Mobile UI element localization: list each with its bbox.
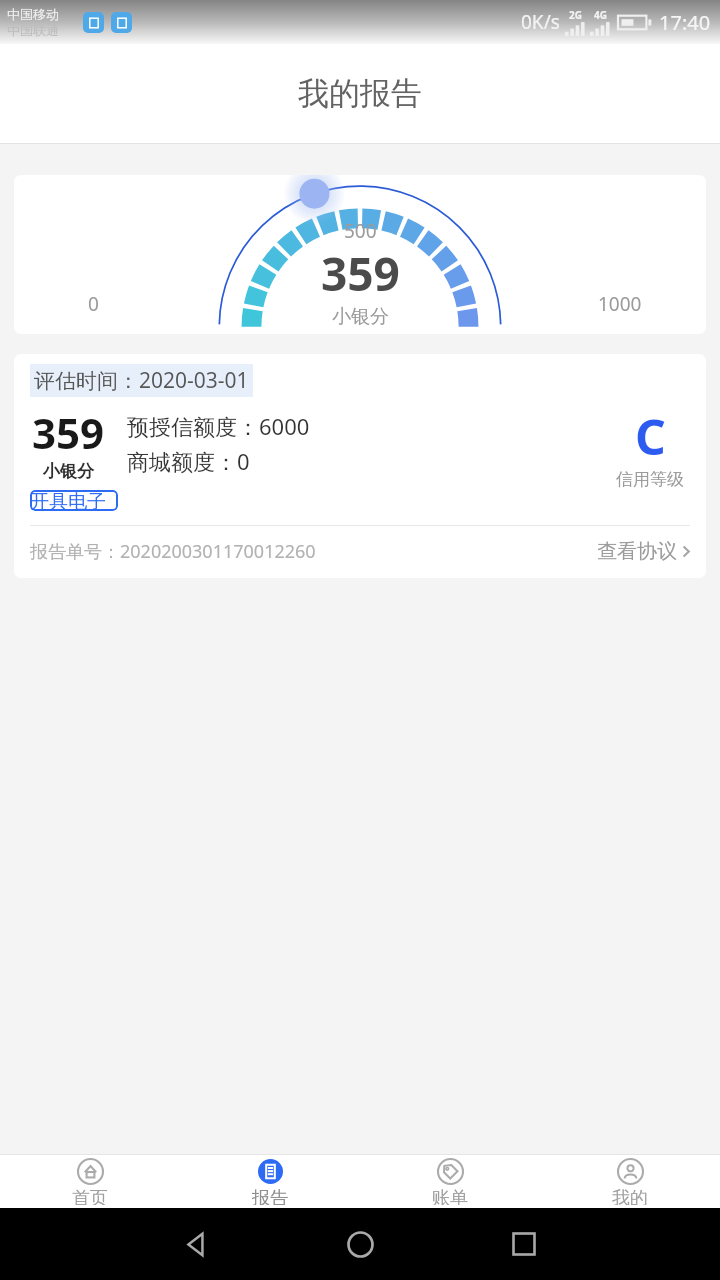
staticText: 359 bbox=[321, 242, 400, 305]
staticText: 查看协议 bbox=[597, 539, 677, 564]
button[interactable]: 我的 bbox=[540, 1155, 720, 1208]
staticText: 小银分 bbox=[332, 305, 389, 329]
button[interactable]: 报告 bbox=[180, 1155, 360, 1208]
staticText: 报告单号：2020200301170012260 bbox=[30, 539, 597, 564]
staticText: 评估时间：2020-03-01 bbox=[34, 366, 249, 395]
staticText: 0K/s bbox=[521, 9, 560, 35]
staticText: 17:40 bbox=[659, 9, 711, 36]
staticText: 500 bbox=[344, 218, 377, 244]
staticText: 我的报告 bbox=[298, 74, 422, 113]
staticText: 4G bbox=[594, 8, 607, 22]
staticText: 1000 bbox=[598, 291, 642, 317]
staticText: 0 bbox=[88, 291, 99, 317]
staticText: 2G bbox=[569, 8, 582, 22]
button[interactable]: Back bbox=[173, 1221, 219, 1267]
staticText: 信用等级 bbox=[616, 469, 684, 490]
staticText: 首页 bbox=[72, 1187, 108, 1205]
staticText: 359 bbox=[32, 404, 105, 461]
staticText: 中国移动 bbox=[7, 6, 59, 22]
button[interactable]: 查看协议 bbox=[597, 536, 690, 567]
staticText: C bbox=[635, 404, 666, 469]
button[interactable]: 开具电子发票 bbox=[30, 490, 118, 511]
staticText: 我的 bbox=[612, 1187, 648, 1205]
button[interactable]: Recent apps bbox=[501, 1221, 547, 1267]
staticText: 中国联通 bbox=[7, 22, 59, 38]
staticText: 开具电子发票 bbox=[30, 490, 118, 511]
button[interactable]: 首页 bbox=[0, 1155, 180, 1208]
staticText: 商城额度：0 bbox=[127, 446, 250, 476]
staticText: 小银分 bbox=[43, 461, 94, 482]
staticText: 账单 bbox=[432, 1187, 468, 1205]
button[interactable]: 账单 bbox=[360, 1155, 540, 1208]
staticText: 预授信额度：6000 bbox=[127, 411, 310, 441]
staticText: 报告 bbox=[252, 1187, 288, 1205]
button[interactable]: Home bbox=[337, 1221, 383, 1267]
